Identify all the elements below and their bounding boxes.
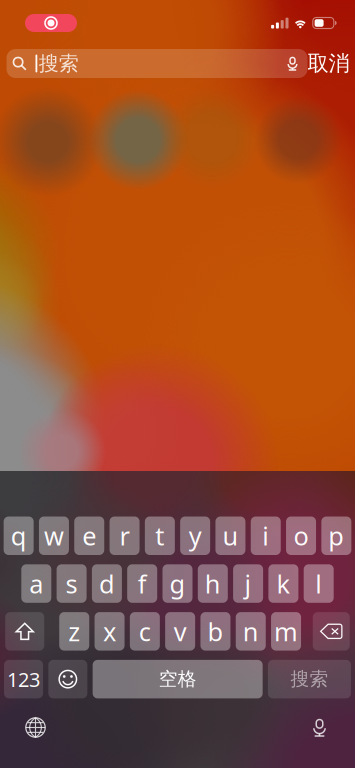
staticText: v (174, 614, 187, 648)
button[interactable]: u (215, 516, 245, 555)
button[interactable]: g (162, 564, 192, 603)
staticText: f (138, 567, 147, 600)
staticText: k (276, 567, 290, 600)
button[interactable]: r (109, 516, 139, 555)
staticText: 空格 (159, 668, 197, 691)
button[interactable]: Delete (313, 612, 350, 651)
button[interactable]: d (92, 564, 122, 603)
staticText: i (262, 519, 269, 552)
staticText: j (245, 567, 252, 600)
staticText: 搜索 (39, 51, 79, 76)
button[interactable]: Shift (5, 612, 44, 651)
button[interactable]: 123 (4, 660, 43, 698)
button[interactable]: Emoji (48, 660, 87, 698)
staticText: 取消 (307, 50, 349, 77)
button[interactable]: w (39, 516, 69, 555)
button[interactable]: c (130, 612, 160, 651)
staticText: b (207, 614, 223, 648)
staticText: g (169, 567, 185, 600)
staticText: z (68, 614, 80, 648)
staticText: q (11, 519, 27, 552)
staticText: m (274, 614, 298, 648)
button[interactable]: x (94, 612, 124, 651)
staticText: p (328, 519, 344, 552)
staticText: a (29, 567, 43, 600)
button[interactable]: a (21, 564, 51, 603)
staticText: d (99, 567, 115, 600)
button[interactable]: t (145, 516, 175, 555)
button[interactable]: p (321, 516, 351, 555)
staticText: h (205, 567, 221, 600)
button[interactable]: z (59, 612, 89, 651)
staticText: s (66, 567, 78, 600)
staticText: l (315, 567, 322, 600)
button[interactable]: o (286, 516, 316, 555)
button[interactable]: h (198, 564, 228, 603)
staticText: c (139, 614, 151, 648)
button[interactable]: q (4, 516, 34, 555)
button[interactable]: Dictation (299, 707, 340, 748)
button[interactable]: e (74, 516, 104, 555)
button[interactable]: y (180, 516, 210, 555)
button[interactable]: b (200, 612, 230, 651)
staticText: 123 (7, 666, 40, 692)
staticText: r (119, 519, 129, 552)
staticText: e (82, 519, 96, 552)
staticText: u (222, 519, 238, 552)
button[interactable]: f (127, 564, 157, 603)
staticText: x (103, 614, 116, 648)
button[interactable]: 空格 (93, 660, 263, 698)
staticText: o (294, 519, 309, 552)
staticText: 搜索 (290, 668, 328, 691)
staticText: t (155, 519, 164, 552)
button[interactable]: k (268, 564, 298, 603)
button[interactable]: 搜索 (268, 660, 351, 698)
button[interactable]: v (165, 612, 195, 651)
button[interactable]: i (251, 516, 281, 555)
button[interactable]: j (233, 564, 263, 603)
button[interactable]: 搜索 (6, 49, 307, 78)
button[interactable]: l (304, 564, 334, 603)
staticText: w (44, 519, 64, 552)
staticText: n (243, 614, 259, 648)
button[interactable]: n (236, 612, 266, 651)
button[interactable]: m (271, 612, 301, 651)
staticText: y (189, 519, 202, 552)
button[interactable]: s (57, 564, 87, 603)
button[interactable]: 取消 (307, 50, 349, 77)
button[interactable]: Switch keyboard (15, 707, 56, 748)
